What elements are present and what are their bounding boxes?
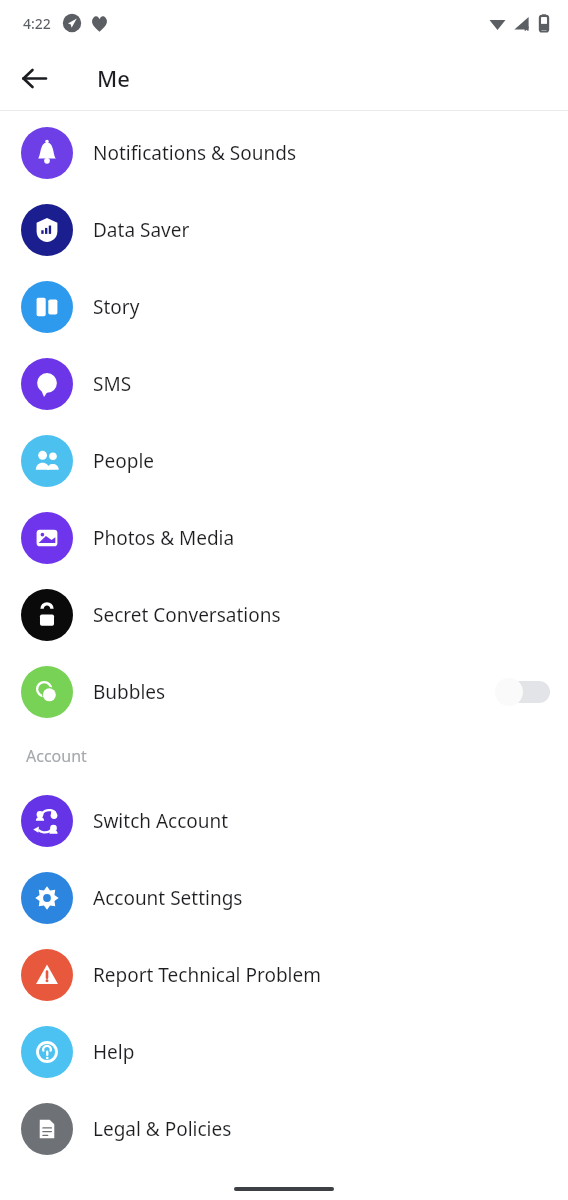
staticText: Story (93, 294, 550, 320)
staticText: Me (97, 63, 130, 93)
staticText: Account (26, 745, 87, 767)
button[interactable]: Switch Account (0, 782, 568, 859)
button[interactable]: Secret Conversations (0, 576, 568, 653)
button[interactable]: Help (0, 1013, 568, 1090)
staticText: Report Technical Problem (93, 962, 550, 988)
staticText: 4:22 (23, 14, 51, 33)
staticText: Help (93, 1039, 550, 1065)
button[interactable]: Back (10, 54, 58, 102)
button[interactable]: People (0, 422, 568, 499)
staticText: Bubbles (93, 679, 494, 705)
button[interactable]: Bubbles toggle (494, 675, 550, 709)
staticText: SMS (93, 371, 550, 397)
staticText: Switch Account (93, 808, 550, 834)
button[interactable]: Notifications & Sounds (0, 114, 568, 191)
staticText: Notifications & Sounds (93, 140, 550, 166)
staticText: Data Saver (93, 217, 550, 243)
button[interactable]: SMS (0, 345, 568, 422)
staticText: Secret Conversations (93, 602, 550, 628)
button[interactable]: Report Technical Problem (0, 936, 568, 1013)
button[interactable]: Legal & Policies (0, 1090, 568, 1167)
staticText: Legal & Policies (93, 1116, 550, 1142)
staticText: Account Settings (93, 885, 550, 911)
button[interactable]: Photos & Media (0, 499, 568, 576)
button[interactable]: Account Settings (0, 859, 568, 936)
button[interactable]: Data Saver (0, 191, 568, 268)
staticText: Photos & Media (93, 525, 550, 551)
button[interactable]: Story (0, 268, 568, 345)
button[interactable]: Bubbles (0, 653, 568, 730)
staticText: People (93, 448, 550, 474)
